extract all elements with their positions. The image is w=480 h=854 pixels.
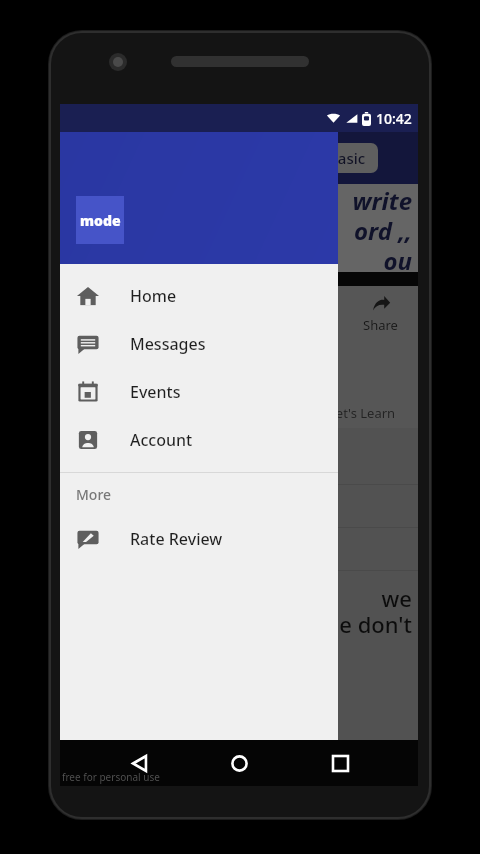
staticText: write ord ,, ou — [352, 184, 412, 272]
button[interactable]: Home — [60, 272, 338, 320]
staticText: 10:42 — [376, 109, 412, 128]
staticText: Events — [130, 381, 181, 403]
staticText: Share — [363, 316, 398, 334]
button[interactable]: Events — [60, 368, 338, 416]
staticText: mode — [80, 211, 121, 230]
staticText: Basic — [328, 148, 366, 168]
staticText: Let's Learn — [329, 404, 396, 422]
staticText: free for personal use — [62, 770, 160, 784]
staticText: Account — [130, 429, 193, 451]
staticText: we e don't — [60, 583, 412, 640]
button[interactable]: Back — [117, 741, 161, 785]
button[interactable]: Basic — [316, 143, 378, 173]
button[interactable]: Home — [217, 741, 261, 785]
button[interactable]: Account — [60, 416, 338, 464]
button[interactable]: Recent apps — [318, 741, 362, 785]
button[interactable]: Rate Review — [60, 515, 338, 563]
button[interactable]: Messages — [60, 320, 338, 368]
button[interactable]: Share — [363, 294, 398, 334]
staticText: Home — [130, 285, 177, 307]
staticText: Messages — [130, 333, 206, 355]
staticText: Rate Review — [130, 528, 223, 550]
button[interactable] — [60, 528, 418, 570]
button[interactable] — [60, 442, 418, 484]
button[interactable] — [60, 485, 418, 527]
staticText: More — [76, 485, 112, 504]
